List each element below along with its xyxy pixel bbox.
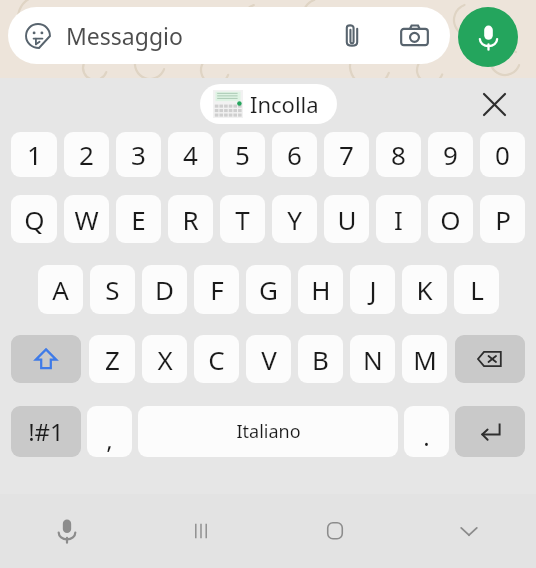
button[interactable]: N (350, 335, 395, 383)
button[interactable]: Hide keyboard (402, 494, 536, 568)
button[interactable]: Incolla (200, 84, 337, 124)
staticText: C (208, 342, 225, 377)
staticText: M (413, 342, 437, 377)
staticText: E (131, 202, 146, 237)
staticText: I (394, 202, 403, 237)
staticText: !#1 (28, 415, 64, 448)
button[interactable]: U (324, 195, 369, 243)
staticText: Messaggio (66, 20, 332, 51)
staticText: H (311, 272, 331, 307)
staticText: Y (287, 202, 302, 237)
button[interactable]: Record voice message (458, 7, 518, 67)
button[interactable]: Y (272, 195, 317, 243)
button[interactable]: M (402, 335, 447, 383)
button[interactable]: P (480, 195, 525, 243)
staticText: 1 (27, 137, 42, 172)
button[interactable]: 8 (376, 132, 421, 177)
button[interactable]: !#1 (11, 406, 81, 457)
button[interactable]: . (404, 406, 449, 457)
staticText: 0 (495, 137, 510, 172)
button[interactable]: Recent apps (134, 494, 268, 568)
button[interactable]: T (220, 195, 265, 243)
button[interactable]: 9 (428, 132, 473, 177)
staticText: U (337, 202, 357, 237)
staticText: 4 (183, 137, 198, 172)
staticText: 5 (235, 137, 250, 172)
button[interactable]: Home (268, 494, 402, 568)
button[interactable]: Italiano (138, 406, 398, 457)
staticText: T (235, 202, 250, 237)
button[interactable]: O (428, 195, 473, 243)
button[interactable]: D (142, 265, 187, 314)
staticText: K (416, 272, 433, 307)
staticText: 7 (339, 137, 354, 172)
staticText: R (182, 202, 199, 237)
staticText: 3 (131, 137, 146, 172)
button[interactable]: 4 (168, 132, 213, 177)
staticText: Q (24, 202, 45, 237)
button[interactable]: Close (474, 84, 514, 124)
button[interactable]: C (194, 335, 239, 383)
staticText: B (312, 342, 329, 377)
button[interactable]: B (298, 335, 343, 383)
button[interactable]: , (87, 406, 132, 457)
staticText: Italiano (236, 419, 301, 444)
staticText: F (210, 272, 224, 307)
button[interactable]: 5 (220, 132, 265, 177)
staticText: S (105, 272, 120, 307)
staticText: . (423, 420, 430, 453)
button[interactable]: 2 (64, 132, 109, 177)
staticText: N (363, 342, 383, 377)
button[interactable]: G (246, 265, 291, 314)
button[interactable]: F (194, 265, 239, 314)
button[interactable]: Attach file (332, 16, 372, 56)
staticText: 6 (287, 137, 302, 172)
staticText: Incolla (250, 89, 319, 119)
button[interactable]: Voice input (0, 494, 134, 568)
button[interactable]: 1 (11, 132, 57, 177)
staticText: W (74, 202, 99, 237)
staticText: V (261, 342, 277, 377)
button[interactable]: H (298, 265, 343, 314)
staticText: 8 (391, 137, 406, 172)
button[interactable]: Z (89, 335, 135, 383)
button[interactable]: 0 (480, 132, 525, 177)
button[interactable]: Backspace (455, 335, 525, 383)
button[interactable]: Camera (394, 16, 434, 56)
staticText: Z (105, 342, 120, 377)
button[interactable]: J (350, 265, 395, 314)
button[interactable]: R (168, 195, 213, 243)
button[interactable]: K (402, 265, 447, 314)
staticText: A (52, 272, 69, 307)
staticText: X (157, 342, 173, 377)
button[interactable]: Enter (455, 406, 525, 457)
staticText: , (106, 423, 113, 456)
button[interactable]: 3 (116, 132, 161, 177)
button[interactable]: 7 (324, 132, 369, 177)
staticText: 2 (79, 137, 94, 172)
button[interactable]: X (142, 335, 187, 383)
staticText: D (155, 272, 174, 307)
button[interactable]: I (376, 195, 421, 243)
button[interactable]: L (454, 265, 499, 314)
button[interactable]: Q (11, 195, 57, 243)
staticText: P (495, 202, 511, 237)
button[interactable]: Shift (11, 335, 81, 383)
button[interactable]: Stickers (22, 20, 54, 52)
staticText: J (369, 272, 377, 307)
button[interactable]: W (64, 195, 109, 243)
staticText: O (440, 202, 461, 237)
staticText: G (259, 272, 278, 307)
button[interactable]: A (38, 265, 83, 314)
button[interactable]: V (246, 335, 291, 383)
button[interactable]: S (90, 265, 135, 314)
button[interactable]: 6 (272, 132, 317, 177)
button[interactable]: E (116, 195, 161, 243)
button[interactable]: Stickers (8, 7, 450, 64)
staticText: L (470, 272, 484, 307)
staticText: 9 (443, 137, 458, 172)
